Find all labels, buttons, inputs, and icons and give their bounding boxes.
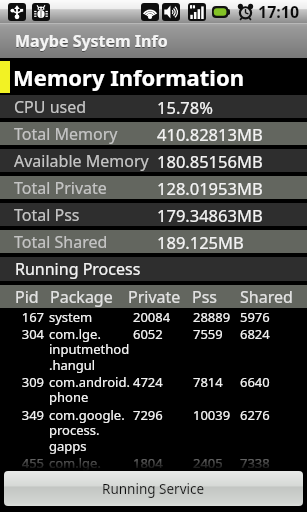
staticText: 128.01953MB <box>157 177 263 199</box>
staticText: 349 <box>15 406 44 424</box>
staticText: 2405 <box>193 454 223 472</box>
staticText: CPU used <box>14 96 157 118</box>
button[interactable]: Available Memory <box>0 149 307 172</box>
staticText: Total Pss <box>14 204 157 226</box>
button[interactable]: 349 <box>0 406 307 454</box>
button[interactable]: 167 <box>0 308 307 325</box>
staticText: Maybe System Info <box>15 30 168 52</box>
button[interactable]: Total Private <box>0 176 307 199</box>
staticText: Pss <box>192 286 218 308</box>
button[interactable]: 304 <box>0 325 307 373</box>
staticText: 15.78% <box>157 96 213 118</box>
staticText: 6824 <box>240 325 270 343</box>
staticText: Total Memory <box>14 123 157 145</box>
staticText: 7296 <box>133 406 163 424</box>
button[interactable]: Total Pss <box>0 203 307 226</box>
staticText: 28889 <box>193 308 231 325</box>
staticText: Package <box>50 286 113 308</box>
button[interactable]: Running Service <box>4 471 303 506</box>
staticText: 6640 <box>240 373 270 391</box>
staticText: 179.34863MB <box>157 204 263 226</box>
staticText: 17:10 <box>258 1 300 23</box>
staticText: 6052 <box>133 325 163 343</box>
staticText: 309 <box>15 373 44 391</box>
staticText: com.google. process. gapps <box>49 406 133 454</box>
staticText: com.android. phone <box>49 373 133 406</box>
button[interactable]: 455 <box>0 454 307 487</box>
button[interactable]: Total Shared <box>0 230 307 253</box>
other: Alarm set <box>237 3 254 20</box>
staticText: 7559 <box>193 325 223 343</box>
staticText: 455 <box>15 454 44 472</box>
staticText: Pid <box>15 286 39 308</box>
staticText: Memory Information <box>13 62 244 92</box>
staticText: 7338 <box>240 454 270 472</box>
staticText: Maybe System Info <box>15 31 168 53</box>
other: Battery <box>212 6 230 18</box>
staticText: Total Private <box>14 177 157 199</box>
staticText: 167 <box>15 308 44 325</box>
staticText: 410.82813MB <box>157 123 263 145</box>
button[interactable]: Running Process <box>0 257 307 281</box>
staticText: Total Shared <box>14 231 157 253</box>
staticText: Available Memory <box>14 150 157 172</box>
staticText: 304 <box>15 325 44 343</box>
button[interactable]: Total Memory <box>0 122 307 145</box>
staticText: 10039 <box>193 406 231 424</box>
staticText: 7814 <box>193 373 223 391</box>
staticText: 5976 <box>240 308 270 325</box>
button[interactable]: 309 <box>0 373 307 406</box>
staticText: com.lge. inputmethod .hangul <box>49 325 133 373</box>
button[interactable]: CPU used <box>0 95 307 118</box>
staticText: Private <box>128 286 181 308</box>
staticText: com.lge. launcher <box>49 454 133 487</box>
staticText: Shared <box>240 286 293 308</box>
staticText: 6276 <box>240 406 270 424</box>
staticText: system <box>49 308 133 325</box>
staticText: 20084 <box>133 308 171 325</box>
staticText: 189.125MB <box>157 231 244 253</box>
staticText: Running Service <box>102 480 205 498</box>
staticText: 1804 <box>133 454 163 472</box>
staticText: 180.85156MB <box>157 150 263 172</box>
staticText: Running Process <box>15 258 141 280</box>
staticText: 4724 <box>133 373 163 391</box>
